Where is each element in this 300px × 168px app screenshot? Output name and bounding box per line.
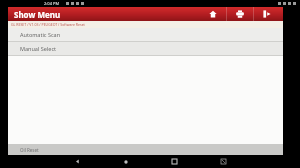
staticText: GL RESET / V1.03 / PEUGEOT / Software Re…	[11, 22, 85, 27]
button[interactable]: Recents	[161, 155, 187, 168]
staticText: Oil Reset	[20, 147, 39, 153]
staticText: Show Menu	[14, 9, 61, 20]
button[interactable]: Exit	[254, 7, 280, 21]
button[interactable]: Back	[64, 155, 90, 168]
staticText: 2:04 PM	[44, 1, 60, 6]
button[interactable]: Home	[200, 7, 226, 21]
staticText: Automatic Scan	[20, 31, 61, 38]
button[interactable]: Home	[113, 155, 139, 168]
button[interactable]: Screenshot	[210, 155, 236, 168]
button[interactable]: Manual Select	[8, 42, 283, 55]
button[interactable]: Automatic Scan	[8, 28, 283, 41]
staticText: Manual Select	[20, 45, 57, 52]
button[interactable]: Print	[227, 7, 253, 21]
